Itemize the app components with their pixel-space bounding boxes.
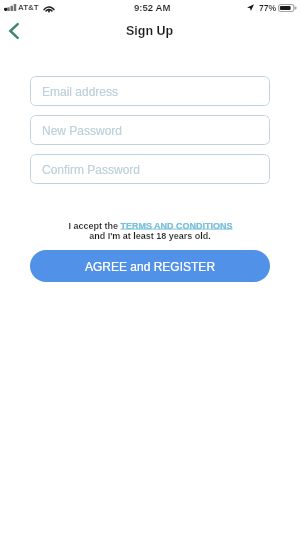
button[interactable]: AGREE and REGISTER bbox=[30, 250, 270, 282]
button[interactable]: I accept the TERMS AND CONDITIONS bbox=[68, 221, 233, 231]
staticText: and I'm at least 18 years old. bbox=[89, 231, 211, 241]
button[interactable]: New Password bbox=[30, 115, 270, 145]
staticText: 77% bbox=[259, 3, 277, 13]
button[interactable]: Email address bbox=[30, 76, 270, 106]
staticText: Confirm Password bbox=[42, 163, 141, 176]
staticText: I accept the TERMS AND CONDITIONS bbox=[68, 221, 233, 231]
staticText: 9:52 AM bbox=[134, 2, 171, 13]
button[interactable]: Back bbox=[0, 16, 29, 46]
staticText: Email address bbox=[42, 85, 119, 98]
staticText: Sign Up bbox=[126, 24, 174, 38]
button[interactable]: Confirm Password bbox=[30, 154, 270, 184]
staticText: AT&T bbox=[18, 3, 39, 12]
staticText: AGREE and REGISTER bbox=[85, 260, 216, 273]
staticText: New Password bbox=[42, 124, 123, 137]
